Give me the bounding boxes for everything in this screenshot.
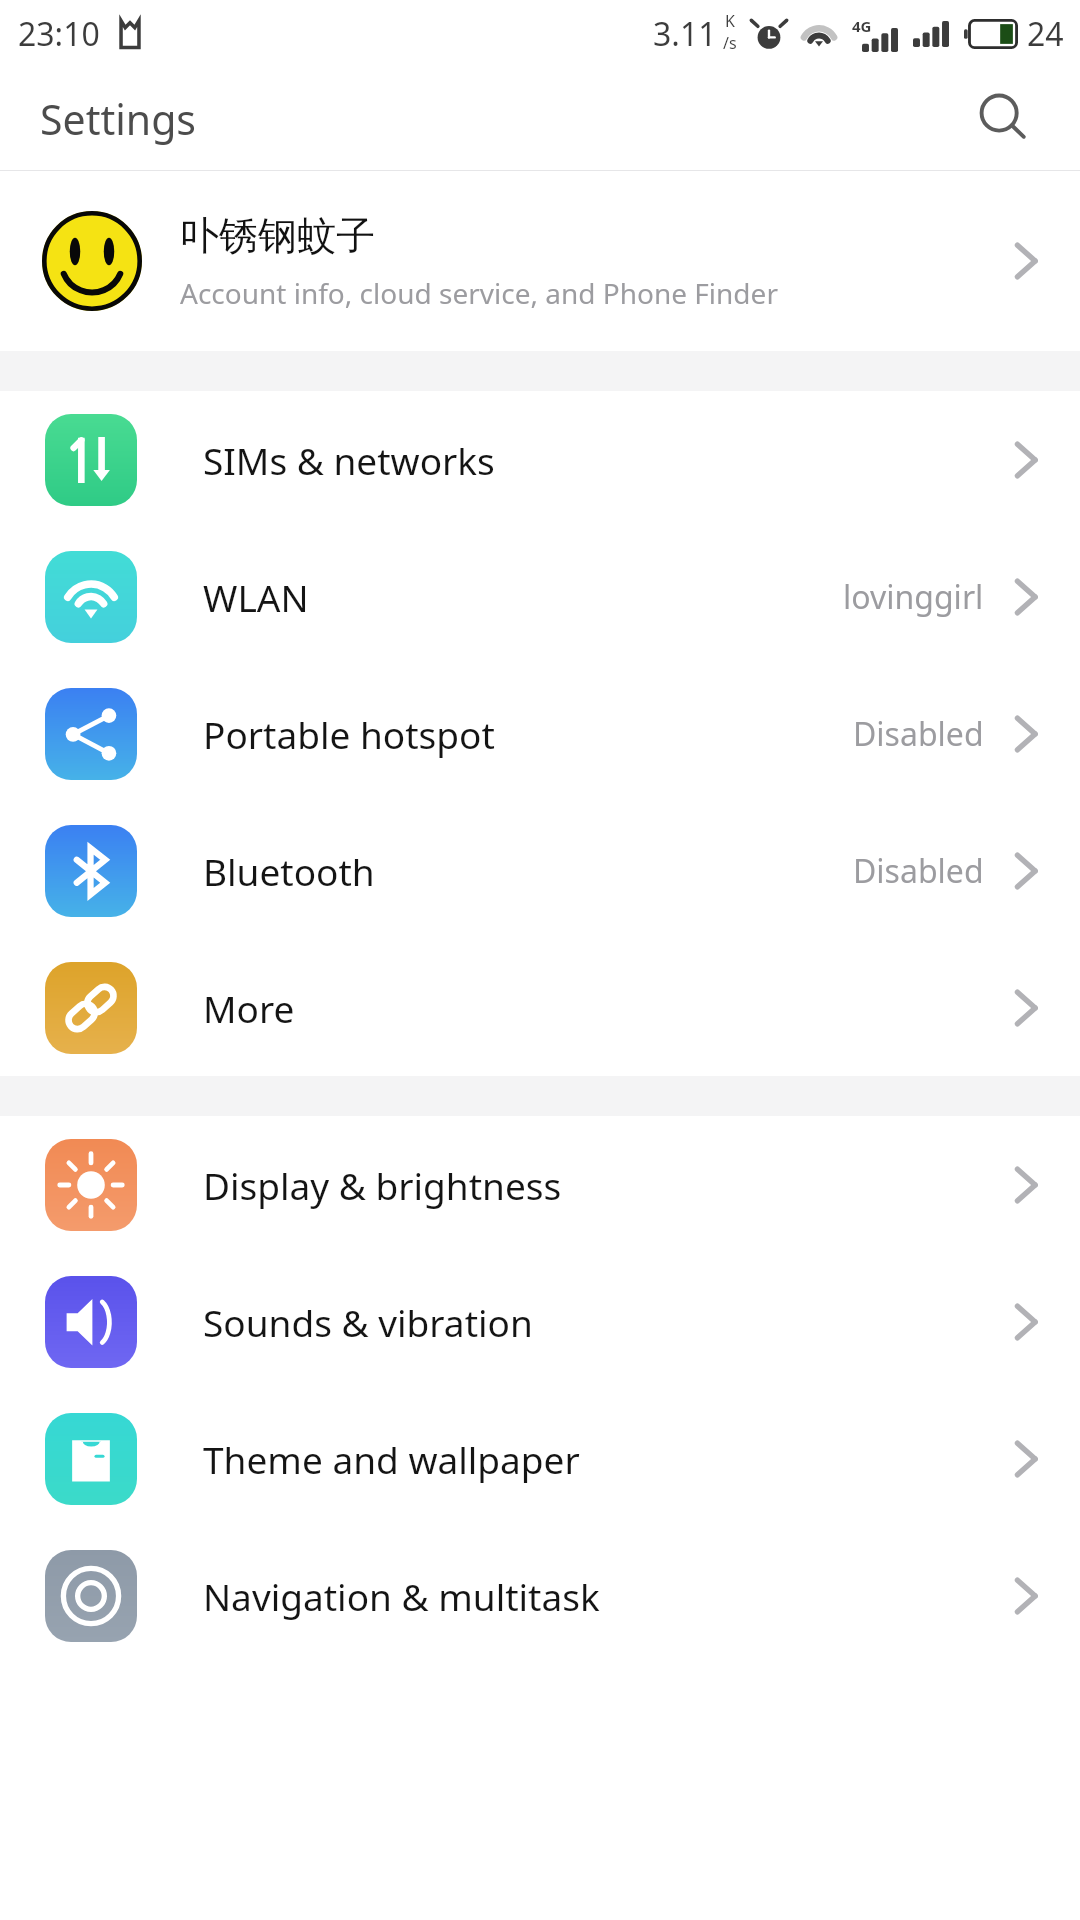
button[interactable]: SIMs & networks bbox=[0, 391, 1080, 528]
staticText: K bbox=[725, 10, 735, 32]
button[interactable]: Sounds & vibration bbox=[0, 1253, 1080, 1390]
button[interactable]: 卟锈钢蚊子 bbox=[0, 171, 1080, 351]
staticText: Disabled bbox=[853, 849, 984, 893]
staticText: 23:10 bbox=[18, 12, 100, 56]
staticText: Sounds & vibration bbox=[203, 1297, 1010, 1347]
staticText: Settings bbox=[40, 91, 197, 147]
button[interactable]: Search bbox=[964, 79, 1044, 159]
staticText: Theme and wallpaper bbox=[203, 1434, 1010, 1484]
button[interactable]: Bluetooth bbox=[0, 802, 1080, 939]
staticText: Disabled bbox=[853, 712, 984, 756]
button[interactable]: Navigation & multitask bbox=[0, 1527, 1080, 1664]
staticText: SIMs & networks bbox=[203, 435, 1010, 485]
button[interactable]: Display & brightness bbox=[0, 1116, 1080, 1253]
button[interactable]: More bbox=[0, 939, 1080, 1076]
button[interactable]: Portable hotspot bbox=[0, 665, 1080, 802]
staticText: Display & brightness bbox=[203, 1160, 1010, 1210]
staticText: Navigation & multitask bbox=[203, 1571, 1010, 1621]
button[interactable]: Theme and wallpaper bbox=[0, 1390, 1080, 1527]
staticText: lovinggirl bbox=[843, 575, 984, 619]
button[interactable]: WLAN bbox=[0, 528, 1080, 665]
staticText: 24 bbox=[1027, 12, 1064, 56]
staticText: WLAN bbox=[203, 572, 843, 622]
staticText: Account info, cloud service, and Phone F… bbox=[180, 274, 778, 312]
staticText: /s bbox=[723, 32, 737, 54]
staticText: 3.11 bbox=[653, 12, 717, 56]
staticText: More bbox=[203, 983, 1010, 1033]
staticText: 卟锈钢蚊子 bbox=[180, 211, 375, 260]
staticText: Bluetooth bbox=[203, 846, 853, 896]
staticText: 4G bbox=[852, 16, 872, 36]
staticText: Portable hotspot bbox=[203, 709, 853, 759]
